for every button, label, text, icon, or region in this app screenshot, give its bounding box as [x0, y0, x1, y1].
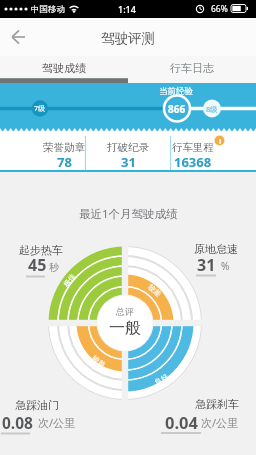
- staticText: 极佳: [61, 272, 77, 289]
- staticText: 原地怠速: [194, 242, 238, 256]
- staticText: 0.08: [2, 412, 33, 433]
- staticText: 7级: [34, 104, 46, 114]
- staticText: 次/公里: [38, 415, 76, 430]
- staticText: %: [221, 259, 230, 273]
- staticText: 31: [197, 254, 216, 276]
- staticText: 较差: [90, 354, 107, 369]
- staticText: 中国移动: [31, 4, 65, 15]
- staticText: 1:14: [118, 3, 136, 15]
- staticText: 31: [121, 153, 136, 171]
- staticText: 次/公里: [201, 415, 239, 430]
- staticText: 78: [57, 153, 72, 171]
- staticText: 当前经验: [159, 86, 193, 97]
- staticText: 66%: [211, 3, 228, 15]
- button[interactable]: [4, 22, 34, 52]
- staticText: 一般: [109, 318, 141, 338]
- button[interactable]: [128, 56, 256, 83]
- staticText: 秒: [49, 261, 59, 274]
- staticText: 最近1个月驾驶成绩: [79, 206, 178, 222]
- staticText: 打破纪录: [107, 141, 149, 154]
- button[interactable]: [0, 56, 128, 83]
- staticText: 起步热车: [19, 243, 63, 257]
- staticText: 0.04: [165, 411, 198, 433]
- staticText: 急踩刹车: [195, 397, 239, 411]
- staticText: 良好: [153, 372, 170, 387]
- staticText: 行车里程: [172, 141, 214, 154]
- staticText: 驾驶成绩: [42, 61, 86, 75]
- staticText: 8级: [206, 104, 218, 114]
- staticText: 16368: [174, 153, 212, 171]
- staticText: 总评: [116, 306, 134, 317]
- staticText: 行车日志: [170, 61, 214, 75]
- staticText: 荣誉勋章: [43, 141, 85, 154]
- staticText: 45: [28, 254, 47, 276]
- staticText: i: [219, 136, 222, 146]
- staticText: 急踩油门: [15, 398, 59, 412]
- staticText: 驾驶评测: [101, 30, 155, 47]
- staticText: 较差: [146, 282, 163, 298]
- staticText: 866: [168, 102, 186, 116]
